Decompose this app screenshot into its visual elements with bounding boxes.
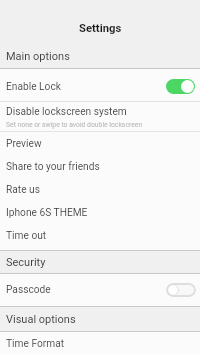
button[interactable]: Rate us	[0, 178, 200, 201]
staticText: Share to your friends	[6, 161, 100, 173]
button[interactable]: Enable Lock	[0, 72, 200, 101]
staticText: Rate us	[6, 184, 40, 196]
button[interactable]: Passcode	[0, 274, 200, 306]
staticText: Main options	[6, 50, 70, 63]
staticText: Settings	[79, 22, 122, 35]
staticText: Iphone 6S THEME	[6, 207, 88, 219]
staticText: Security	[6, 256, 46, 269]
staticText: Enable Lock	[6, 81, 61, 93]
button[interactable]: Iphone 6S THEME	[0, 201, 200, 224]
staticText: Time Format	[6, 338, 65, 350]
button[interactable]: Time Format	[0, 332, 200, 355]
staticText: Preview	[6, 138, 42, 150]
staticText: Time out	[6, 230, 47, 242]
button[interactable]: Disable lockscreen system	[0, 102, 200, 131]
staticText: Disable lockscreen system	[6, 106, 127, 118]
staticText: Set none or swipe to avoid double locksc…	[6, 121, 143, 129]
staticText: Visual options	[6, 313, 76, 326]
button[interactable]: Preview	[0, 132, 200, 155]
button[interactable]: Share to your friends	[0, 155, 200, 178]
staticText: Passcode	[6, 284, 51, 296]
button[interactable]: Time out	[0, 224, 200, 247]
